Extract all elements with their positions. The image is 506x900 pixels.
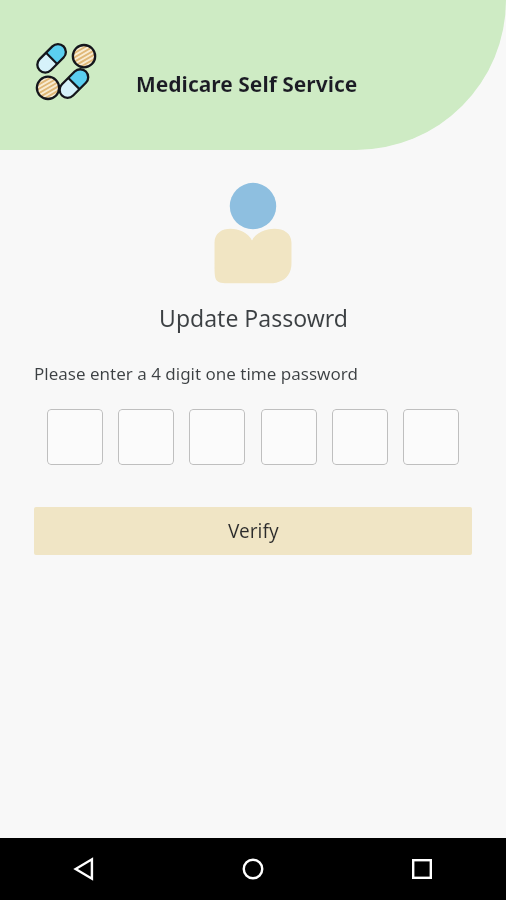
staticText: Medicare Self Service: [136, 70, 358, 99]
button[interactable]: [47, 409, 103, 465]
button[interactable]: Verify: [34, 507, 472, 555]
button[interactable]: Back: [0, 838, 168, 900]
staticText: Verify: [228, 518, 279, 544]
button[interactable]: Home: [168, 838, 337, 900]
staticText: Please enter a 4 digit one time password: [34, 362, 358, 385]
button[interactable]: [261, 409, 317, 465]
button[interactable]: [189, 409, 245, 465]
button[interactable]: Recent apps: [337, 838, 506, 900]
button[interactable]: [332, 409, 388, 465]
staticText: Update Passowrd: [159, 302, 348, 333]
button[interactable]: [118, 409, 174, 465]
button[interactable]: [403, 409, 459, 465]
